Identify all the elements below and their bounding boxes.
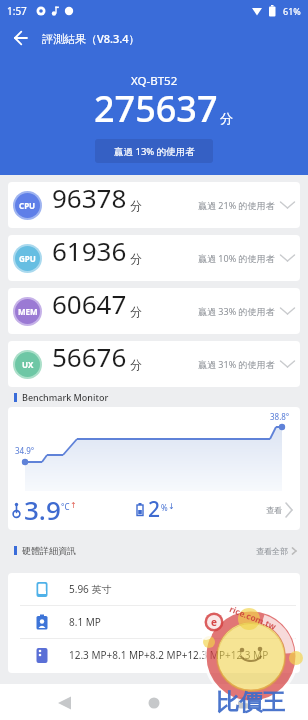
button[interactable]: 5.96 英寸 (8, 573, 300, 605)
staticText: 查看 (266, 505, 282, 515)
button[interactable]: MEM (8, 288, 300, 334)
button[interactable]: 查看全部 (256, 546, 298, 556)
staticText: MEM (18, 306, 38, 317)
staticText: % (161, 502, 168, 513)
button[interactable]: GPU (8, 235, 300, 281)
staticText: 分 (130, 304, 142, 319)
staticText: 56676 (52, 341, 127, 374)
staticText: Benchmark Monitor (22, 391, 109, 403)
staticText: CPU (19, 200, 36, 211)
staticText: 61% (283, 5, 301, 17)
staticText: 3.9 (24, 492, 61, 527)
staticText: 5.96 英寸 (69, 582, 112, 596)
staticText: XQ-BT52 (131, 73, 178, 89)
staticText: GPU (19, 253, 36, 264)
button[interactable]: 12.3 MP+8.1 MP+8.2 MP+12.3 MP+12.3 MP (8, 639, 300, 671)
staticText: 34.9° (15, 445, 35, 456)
staticText: 評測結果（V8.3.4） (42, 31, 140, 46)
staticText: °C (61, 501, 70, 512)
staticText: 1:57 (7, 4, 27, 18)
button[interactable]: UX (8, 341, 300, 387)
staticText: ↑ (70, 501, 77, 510)
staticText: 贏過 10% 的使用者 (198, 252, 275, 264)
staticText: 查看全部 (256, 546, 288, 556)
button[interactable]: CPU (8, 182, 300, 228)
button[interactable]: 8.1 MP (8, 606, 300, 638)
staticText: 贏過 13% 的使用者 (114, 145, 195, 158)
staticText: ↓ (168, 502, 175, 511)
staticText: 分 (130, 357, 142, 372)
staticText: 61936 (52, 235, 127, 268)
staticText: 贏過 31% 的使用者 (198, 358, 275, 370)
staticText: 比價王 (216, 688, 285, 717)
staticText: 硬體詳細資訊 (22, 545, 76, 556)
staticText: 贏過 21% 的使用者 (198, 199, 275, 211)
staticText: 贏過 33% 的使用者 (198, 305, 275, 317)
staticText: 分 (220, 110, 233, 126)
staticText: e (211, 615, 217, 629)
button[interactable] (14, 31, 28, 45)
staticText: UX (22, 359, 34, 370)
button[interactable]: 查看 (266, 501, 294, 519)
staticText: 275637 (94, 84, 218, 133)
staticText: 2 (148, 495, 161, 524)
staticText: 96378 (52, 182, 127, 215)
staticText: 分 (130, 251, 142, 266)
button[interactable]: 贏過 13% 的使用者 (95, 139, 213, 163)
staticText: 60647 (52, 288, 127, 321)
staticText: rice.com.tw (228, 603, 278, 633)
staticText: 12.3 MP+8.1 MP+8.2 MP+12.3 MP+12.3 MP (69, 648, 269, 662)
staticText: 8.1 MP (69, 615, 101, 629)
staticText: 分 (130, 198, 142, 213)
staticText: 38.8° (270, 411, 290, 422)
